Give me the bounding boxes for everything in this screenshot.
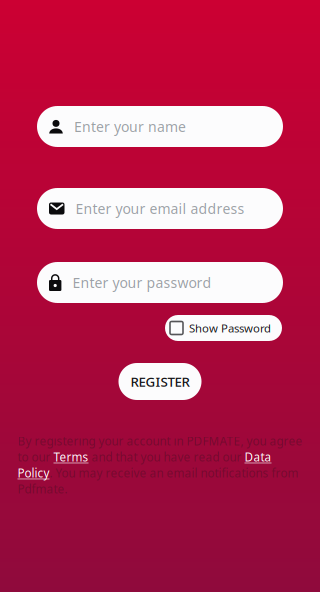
- staticText: Enter your name: [74, 117, 186, 136]
- button[interactable]: Enter your password: [37, 262, 283, 303]
- staticText: Show Password: [189, 320, 271, 336]
- staticText: Enter your password: [72, 273, 211, 292]
- staticText: Enter your email address: [75, 199, 244, 218]
- staticText: REGISTER: [130, 372, 189, 391]
- staticText: By registering your account in PDFMATE, …: [17, 433, 302, 497]
- button[interactable]: Enter your name: [37, 106, 283, 147]
- button[interactable]: Enter your email address: [37, 188, 283, 229]
- button[interactable]: REGISTER: [118, 363, 201, 400]
- button[interactable]: Show Password: [165, 315, 282, 341]
